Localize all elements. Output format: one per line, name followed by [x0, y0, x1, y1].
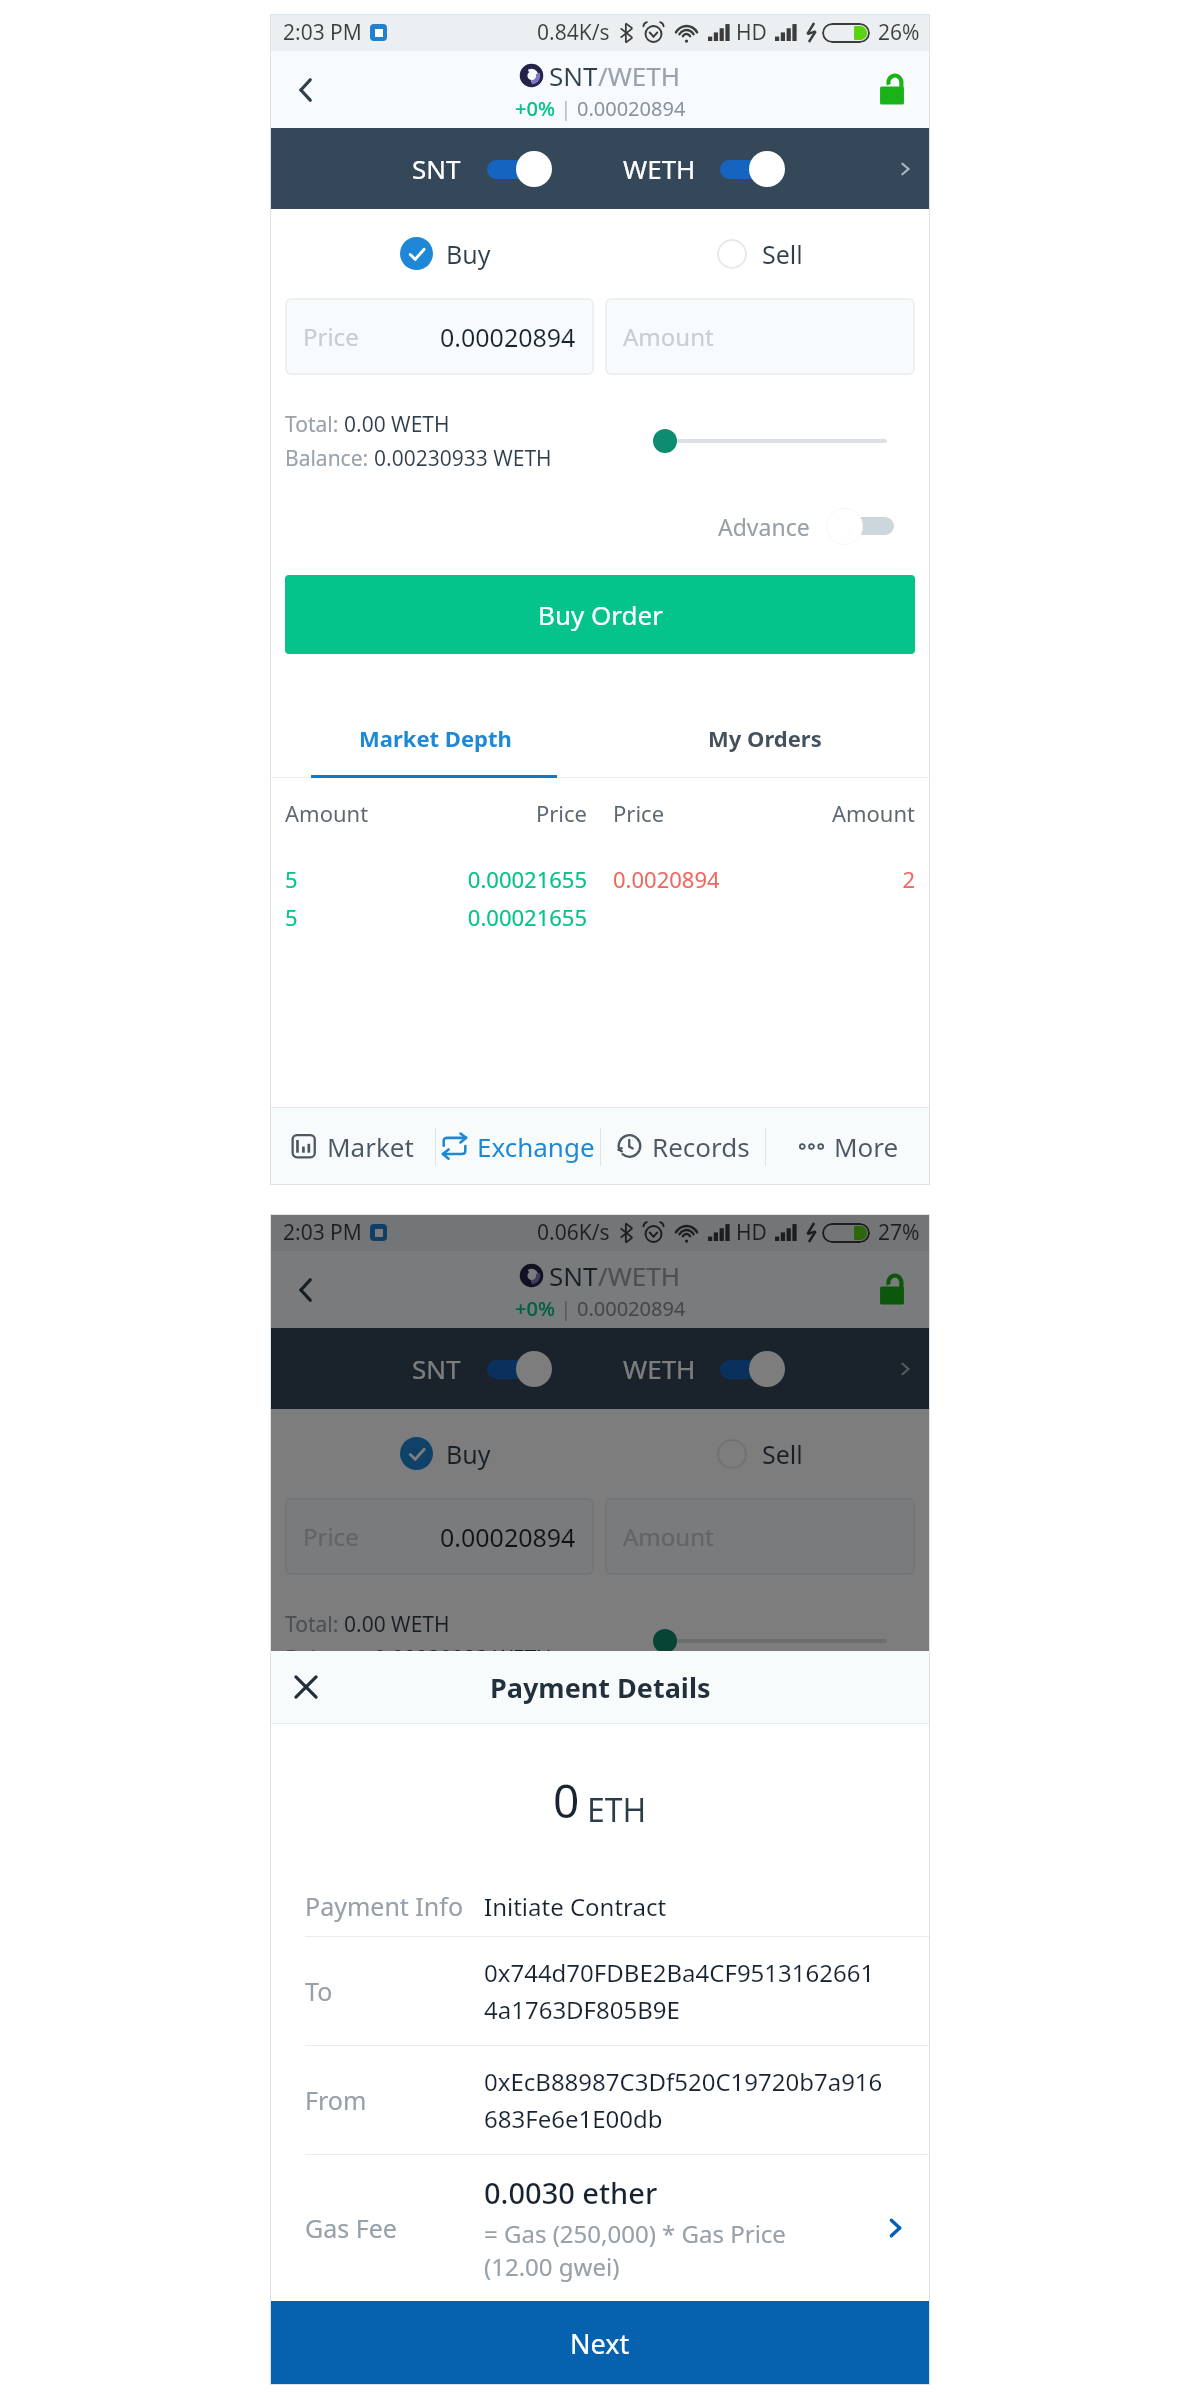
- staticText: Payment Details: [490, 1669, 711, 1706]
- button[interactable]: Sell: [600, 1409, 930, 1498]
- staticText: +0%: [515, 95, 555, 122]
- staticText: Market: [327, 1129, 414, 1164]
- staticText: Total:: [285, 1610, 344, 1639]
- button[interactable]: Exchange: [436, 1108, 600, 1185]
- staticText: Next: [570, 2325, 630, 2362]
- button[interactable]: Buy Order: [285, 575, 915, 654]
- staticText: 2:03 PM: [283, 1218, 362, 1247]
- button[interactable]: Gas Fee: [305, 2173, 908, 2283]
- staticText: 0.00230933 WETH: [374, 1644, 552, 1673]
- staticText: To: [305, 1974, 484, 2008]
- staticText: Amount: [623, 320, 714, 353]
- staticText: 683Fe6e1E00db: [484, 2102, 663, 2135]
- staticText: Exchange: [477, 1129, 595, 1164]
- button[interactable]: My Orders: [600, 697, 930, 778]
- staticText: My Orders: [708, 723, 822, 753]
- staticText: (12.00 gwei): [484, 2250, 620, 2283]
- staticText: 5: [285, 902, 436, 932]
- staticText: From: [305, 2083, 484, 2117]
- button[interactable]: More pairs: [883, 147, 927, 191]
- staticText: Amount: [623, 1520, 714, 1553]
- staticText: ETH: [587, 1788, 647, 1832]
- staticText: |: [555, 95, 577, 122]
- button[interactable]: Close: [270, 1651, 342, 1723]
- button[interactable]: Records: [601, 1108, 765, 1185]
- button[interactable]: Sell: [600, 209, 930, 298]
- staticText: Buy Order: [538, 597, 663, 632]
- staticText: Balance:: [285, 1644, 374, 1673]
- staticText: Initiate Contract: [484, 1890, 667, 1923]
- staticText: Sell: [762, 237, 803, 271]
- staticText: Balance:: [285, 444, 374, 473]
- button[interactable]: Advance toggle: [826, 507, 894, 545]
- staticText: 0.00021655: [436, 864, 587, 894]
- button[interactable]: Next: [270, 2301, 930, 2385]
- button[interactable]: Buy: [270, 1409, 600, 1498]
- staticText: Gas Fee: [305, 2211, 484, 2245]
- staticText: +0%: [515, 1295, 555, 1322]
- button[interactable]: Price: [285, 1498, 594, 1575]
- button[interactable]: Buy: [270, 209, 600, 298]
- staticText: 0x744d70FDBE2Ba4CF9513162661: [484, 1956, 875, 1989]
- staticText: 0.00020894: [440, 1520, 576, 1554]
- staticText: Buy: [446, 237, 491, 271]
- staticText: 2:03 PM: [283, 18, 362, 47]
- staticText: 0.06K/s: [537, 1218, 610, 1247]
- staticText: 0.0020894: [613, 864, 764, 894]
- button[interactable]: Unlocked: [854, 51, 930, 128]
- button[interactable]: More: [766, 1108, 930, 1185]
- staticText: 0.00020894: [440, 320, 576, 354]
- button[interactable]: Back: [270, 51, 342, 128]
- staticText: SNT: [549, 58, 598, 93]
- staticText: 2: [764, 864, 915, 894]
- staticText: |: [555, 1295, 577, 1322]
- staticText: 0.0030 ether: [484, 2173, 658, 2212]
- button[interactable]: More pairs: [883, 1347, 927, 1391]
- button[interactable]: Toggle: [485, 1349, 557, 1389]
- staticText: /WETH: [598, 1258, 681, 1293]
- staticText: Total:: [285, 410, 344, 439]
- staticText: 0.84K/s: [537, 18, 610, 47]
- staticText: 27%: [878, 1218, 920, 1247]
- staticText: 0.00020894: [577, 95, 686, 122]
- staticText: 0.00230933 WETH: [374, 444, 552, 473]
- staticText: More: [834, 1129, 899, 1164]
- button[interactable]: Market Depth: [270, 697, 600, 778]
- button[interactable]: Back: [270, 1251, 342, 1328]
- staticText: Market Depth: [359, 723, 512, 753]
- staticText: Price: [436, 798, 587, 828]
- staticText: Advance: [718, 511, 810, 542]
- staticText: 0xEcB88987C3Df520C19720b7a916: [484, 2065, 883, 2098]
- button[interactable]: Unlocked: [854, 1251, 930, 1328]
- staticText: Price: [303, 1520, 359, 1553]
- button[interactable]: Toggle: [718, 1349, 790, 1389]
- staticText: Price: [303, 320, 359, 353]
- staticText: WETH: [623, 151, 696, 186]
- staticText: = Gas (250,000) * Gas Price: [484, 2217, 786, 2250]
- button[interactable]: Amount: [605, 1498, 915, 1575]
- button[interactable]: Toggle: [718, 149, 790, 189]
- staticText: 0.00021655: [436, 902, 587, 932]
- staticText: HD: [736, 18, 767, 47]
- staticText: HD: [736, 1218, 767, 1247]
- staticText: Payment Info: [305, 1889, 484, 1923]
- staticText: WETH: [623, 1351, 696, 1386]
- button[interactable]: Price: [285, 298, 594, 375]
- staticText: Records: [652, 1129, 750, 1164]
- staticText: Amount: [285, 798, 436, 828]
- staticText: 0.00 WETH: [344, 1610, 450, 1639]
- staticText: 26%: [878, 18, 920, 47]
- staticText: 5: [285, 864, 436, 894]
- button[interactable]: Market: [270, 1108, 435, 1185]
- staticText: 0.00 WETH: [344, 410, 450, 439]
- button[interactable]: Toggle: [485, 149, 557, 189]
- staticText: SNT: [549, 1258, 598, 1293]
- staticText: Price: [613, 798, 764, 828]
- staticText: Buy: [446, 1437, 491, 1471]
- staticText: 0: [553, 1769, 580, 1832]
- staticText: 0.00020894: [577, 1295, 686, 1322]
- button[interactable]: Amount: [605, 298, 915, 375]
- staticText: SNT: [412, 1351, 461, 1386]
- staticText: /WETH: [598, 58, 681, 93]
- staticText: SNT: [412, 151, 461, 186]
